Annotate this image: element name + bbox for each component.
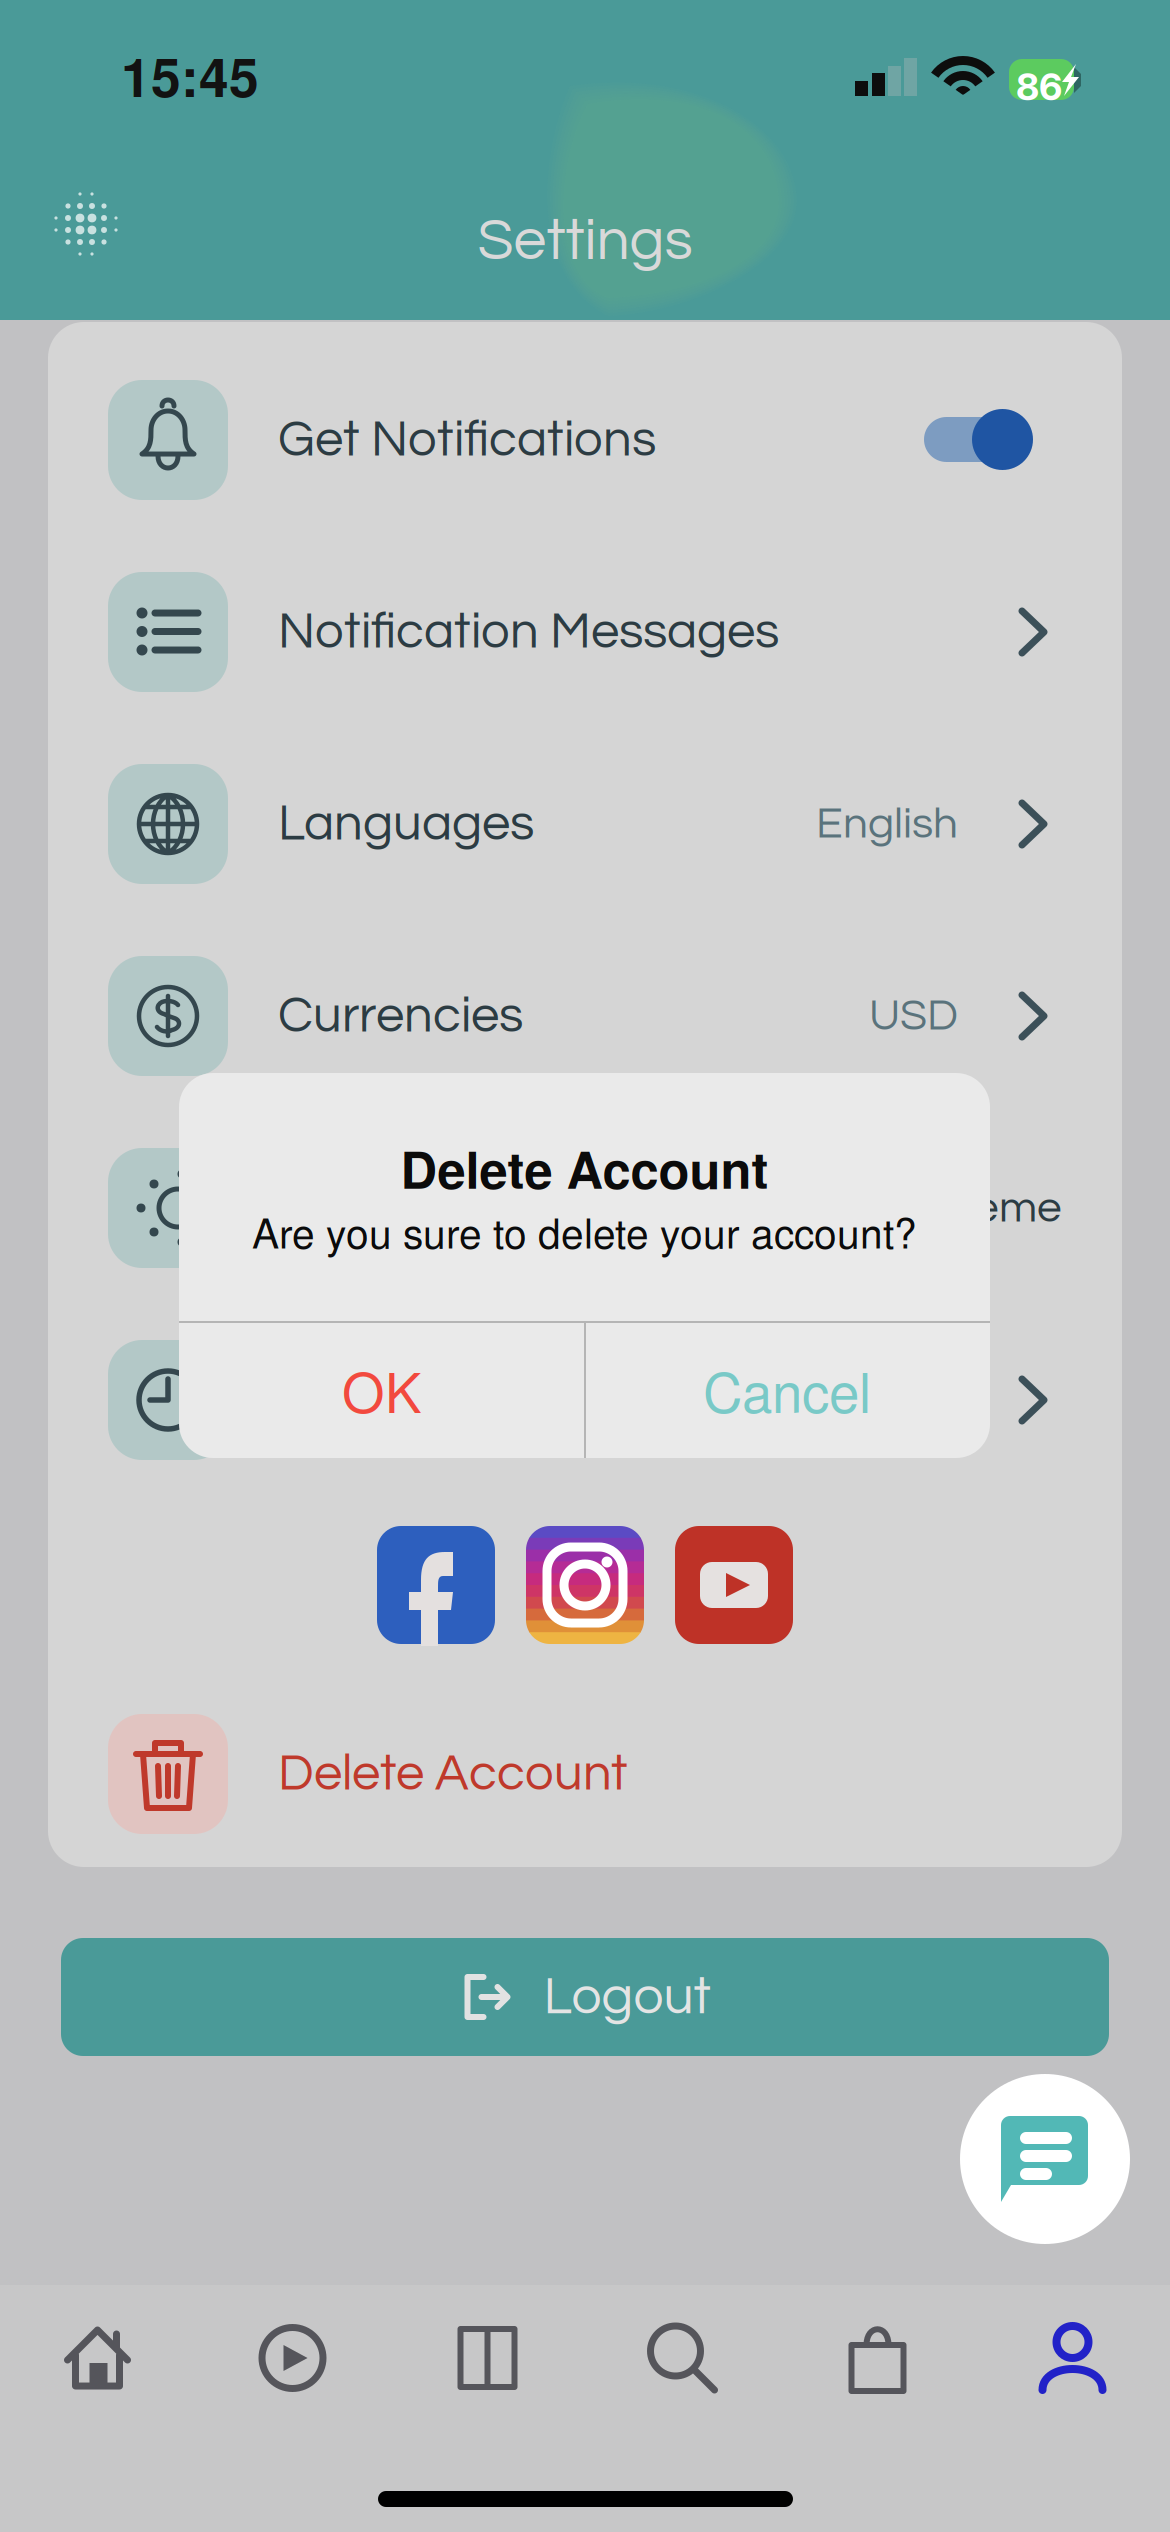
staticText: 15:45 — [121, 37, 259, 113]
button[interactable]: Delete Account — [48, 1714, 1122, 1834]
staticText: Get Notifications — [278, 414, 656, 466]
button[interactable]: YouTube — [675, 1526, 793, 1644]
button[interactable]: Search — [585, 2293, 780, 2423]
button[interactable]: Profile — [975, 2293, 1170, 2423]
button[interactable]: Cart — [780, 2293, 975, 2423]
staticText: OK — [342, 1350, 421, 1429]
button[interactable]: Date Format — [48, 1340, 1122, 1460]
staticText: USD — [869, 993, 958, 1039]
staticText: Cancel — [703, 1350, 871, 1429]
staticText: Date Format — [278, 1374, 565, 1426]
button[interactable]: Menu — [26, 164, 146, 284]
button[interactable]: Catalog — [390, 2293, 585, 2423]
button[interactable]: Get Notifications — [48, 380, 1122, 500]
button[interactable]: Logout — [61, 1938, 1109, 2056]
staticText: Languages — [278, 798, 534, 850]
button[interactable]: Cancel — [584, 1321, 990, 1458]
staticText: Are you sure to delete your account? — [252, 1202, 917, 1260]
staticText: Delete Account — [278, 1748, 628, 1800]
button[interactable]: Chat — [960, 2074, 1130, 2244]
staticText: Light Theme — [819, 1185, 1062, 1231]
button[interactable]: Notification Messages — [48, 572, 1122, 692]
staticText: Notification Messages — [278, 606, 779, 658]
button[interactable]: Theme — [48, 1148, 1122, 1268]
staticText: Logout — [543, 1969, 710, 2024]
staticText: English — [816, 801, 958, 847]
staticText: 86 — [1016, 64, 1062, 109]
button[interactable]: OK — [179, 1321, 584, 1458]
button[interactable]: Currencies — [48, 956, 1122, 1076]
staticText: Settings — [477, 211, 692, 271]
staticText: Theme — [278, 1182, 436, 1234]
button[interactable]: Home — [0, 2293, 195, 2423]
button[interactable]: Instagram — [526, 1526, 644, 1644]
staticText: Delete Account — [400, 1132, 768, 1204]
button[interactable]: Languages — [48, 764, 1122, 884]
button[interactable]: Facebook — [377, 1526, 495, 1644]
button[interactable]: Reels — [195, 2293, 390, 2423]
staticText: Currencies — [278, 990, 523, 1042]
